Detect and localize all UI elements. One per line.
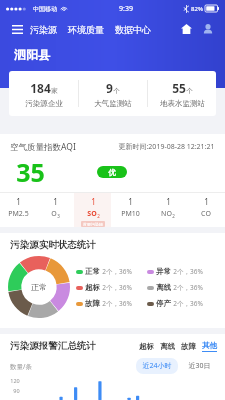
staticText: 离线	[160, 342, 175, 351]
button[interactable]: 数据中心	[114, 22, 152, 37]
button[interactable]: 1	[111, 193, 149, 227]
staticText: 1	[16, 196, 21, 207]
staticText: 环境质量	[68, 24, 104, 35]
staticText: 家	[51, 87, 58, 95]
staticText: 184	[30, 80, 51, 96]
staticText: 1	[204, 196, 209, 207]
staticText: 个	[113, 87, 120, 95]
staticText: 异常	[156, 267, 171, 276]
staticText: 2个，36%	[173, 299, 203, 308]
staticText: 其他	[202, 341, 217, 350]
staticText: 地表水监测站	[160, 99, 205, 108]
staticText: 超标	[139, 342, 154, 351]
staticText: 120	[10, 377, 20, 384]
staticText: 2个，36%	[173, 283, 203, 292]
staticText: 污染源实时状态统计	[10, 239, 96, 251]
staticText: CO	[201, 209, 211, 219]
staticText: 55	[172, 80, 186, 96]
staticText: 优	[108, 168, 116, 177]
staticText: 2	[97, 213, 100, 219]
staticText: 1	[128, 196, 133, 207]
staticText: 首要污染物	[83, 222, 103, 226]
staticText: 数据中心	[115, 24, 151, 35]
button[interactable]: 超标	[76, 283, 147, 292]
staticText: NO	[161, 209, 172, 219]
staticText: 1	[91, 196, 96, 207]
staticText: 近30日	[188, 361, 211, 371]
staticText: PM2.5	[8, 209, 29, 219]
staticText: 正常	[85, 267, 100, 276]
staticText: 正常	[31, 282, 47, 292]
button[interactable]: 1	[0, 193, 37, 227]
button[interactable]: 故障	[181, 342, 196, 351]
button[interactable]: 我的	[199, 20, 217, 38]
staticText: 90	[13, 387, 20, 394]
staticText: 停产	[156, 299, 171, 308]
button[interactable]: 55	[148, 71, 216, 116]
staticText: 个	[186, 87, 193, 95]
staticText: 更新时间:2019-08-28 12:21:21	[118, 142, 215, 152]
staticText: 中国移动	[33, 5, 57, 13]
staticText: 2个，36%	[102, 267, 132, 276]
button[interactable]: 9	[79, 71, 147, 116]
staticText: 故障	[181, 342, 196, 351]
staticText: 离线	[156, 283, 171, 292]
button[interactable]: 184	[9, 71, 78, 116]
button[interactable]: 1	[74, 193, 111, 227]
staticText: 超标	[85, 283, 100, 292]
button[interactable]: 停产	[147, 299, 219, 308]
staticText: 污染源企业	[25, 99, 63, 108]
button[interactable]: 1	[187, 193, 225, 227]
button[interactable]: 环境质量	[67, 22, 105, 37]
staticText: 2个，36%	[102, 299, 132, 308]
staticText: SO	[87, 209, 97, 219]
button[interactable]: 近24小时	[136, 358, 178, 374]
button[interactable]: 离线	[147, 283, 219, 292]
staticText: 空气质量指数AQI	[10, 141, 76, 153]
staticText: 35	[16, 155, 45, 189]
staticText: 大气监测站	[94, 99, 132, 108]
button[interactable]: 故障	[76, 299, 147, 308]
staticText: PM10	[121, 209, 140, 219]
staticText: 82%	[191, 5, 203, 13]
staticText: 泗阳县	[14, 47, 50, 62]
button[interactable]: 菜单	[8, 20, 26, 38]
staticText: 2	[172, 213, 175, 219]
staticText: 污染源报警汇总统计	[10, 340, 96, 352]
button[interactable]: 污染源	[29, 22, 58, 37]
staticText: 故障	[85, 299, 100, 308]
staticText: 污染源	[30, 24, 57, 35]
staticText: 数量/条	[10, 362, 32, 371]
button[interactable]: 离线	[160, 342, 175, 351]
button[interactable]: 正常	[76, 267, 147, 276]
staticText: 9:39	[119, 4, 133, 14]
button[interactable]: 1	[37, 193, 74, 227]
staticText: 1	[166, 196, 171, 207]
staticText: 1	[53, 196, 58, 207]
button[interactable]: 1	[149, 193, 187, 227]
staticText: 2个，36%	[102, 283, 132, 292]
staticText: 9	[106, 80, 113, 96]
staticText: O	[51, 209, 57, 219]
button[interactable]: 优	[97, 166, 127, 178]
button[interactable]: 异常	[147, 267, 219, 276]
button[interactable]: 近30日	[182, 358, 217, 374]
staticText: 近24小时	[142, 361, 172, 371]
button[interactable]: 超标	[139, 342, 154, 351]
button[interactable]: 其他	[202, 341, 217, 352]
button[interactable]: 首页	[177, 20, 195, 38]
staticText: 3	[57, 213, 60, 219]
staticText: 2个，36%	[173, 267, 203, 276]
